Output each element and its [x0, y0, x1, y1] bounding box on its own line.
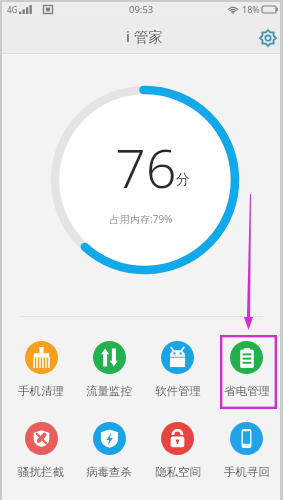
button[interactable]: 隐私空间: [143, 420, 212, 481]
staticText: 占用内存:79%: [110, 212, 173, 226]
staticText: 省电管理: [224, 384, 270, 398]
staticText: 09:53: [129, 3, 154, 16]
button[interactable]: 软件管理: [143, 339, 212, 400]
button[interactable]: 流量监控: [75, 339, 143, 400]
staticText: 隐私空间: [155, 465, 201, 479]
staticText: i 管家: [126, 26, 163, 46]
staticText: 病毒查杀: [86, 465, 132, 479]
staticText: 手机清理: [18, 384, 64, 398]
button[interactable]: 手机清理: [7, 339, 75, 400]
staticText: 4G: [7, 4, 18, 15]
button[interactable]: 手机寻回: [212, 420, 281, 481]
button[interactable]: 骚扰拦截: [7, 420, 75, 481]
button[interactable]: Settings: [255, 25, 281, 51]
button[interactable]: 病毒查杀: [75, 420, 143, 481]
staticText: 18%: [242, 3, 260, 15]
staticText: 骚扰拦截: [18, 465, 64, 479]
staticText: 软件管理: [155, 384, 201, 398]
staticText: 分: [176, 171, 190, 189]
staticText: 手机寻回: [224, 465, 270, 479]
staticText: 流量监控: [86, 384, 132, 398]
button[interactable]: 省电管理: [212, 339, 281, 400]
staticText: 76: [115, 130, 177, 204]
